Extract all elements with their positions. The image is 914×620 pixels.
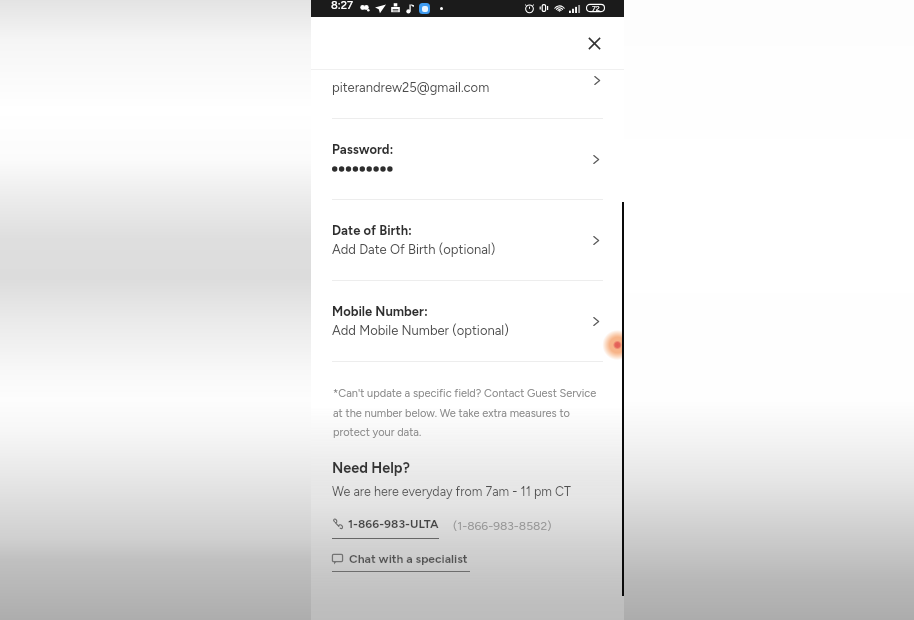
staticText: 1-866-983-ULTA: [348, 517, 439, 531]
staticText: Mobile Number:: [332, 304, 428, 320]
button[interactable]: 1-866-983-ULTA: [332, 517, 439, 531]
button[interactable]: Date of Birth:: [311, 200, 624, 281]
staticText: 72: [592, 4, 600, 12]
staticText: piterandrew25@gmail.com: [332, 80, 490, 96]
staticText: Add Date Of Birth (optional): [332, 242, 496, 258]
button[interactable]: piterandrew25@gmail.com: [311, 70, 624, 119]
button[interactable]: Password:: [311, 119, 624, 200]
button[interactable]: Close: [581, 30, 607, 56]
staticText: Date of Birth:: [332, 223, 413, 239]
staticText: Chat with a specialist: [349, 552, 468, 566]
staticText: 8:27: [331, 0, 353, 12]
button[interactable]: Mobile Number:: [311, 281, 624, 362]
staticText: protect your data.: [333, 426, 422, 439]
staticText: Need Help?: [332, 459, 410, 476]
staticText: Add Mobile Number (optional): [332, 323, 509, 339]
staticText: Password:: [332, 142, 394, 158]
button[interactable]: Chat with a specialist: [332, 552, 470, 566]
staticText: at the number below. We take extra measu…: [333, 407, 570, 420]
staticText: We are here everyday from 7am - 11 pm CT: [332, 484, 571, 499]
staticText: (1-866-983-8582): [453, 519, 552, 533]
staticText: *Can't update a specific field? Contact …: [333, 387, 597, 400]
